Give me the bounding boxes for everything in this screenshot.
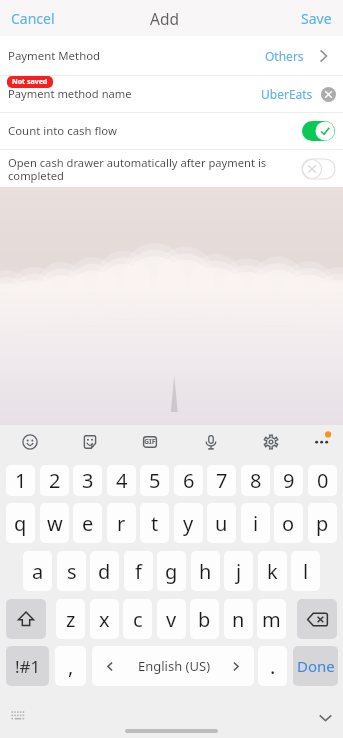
button[interactable]: t bbox=[140, 503, 169, 543]
staticText: g bbox=[165, 558, 178, 585]
staticText: p bbox=[316, 510, 329, 537]
staticText: m bbox=[262, 606, 281, 633]
staticText: Payment method name bbox=[8, 86, 132, 101]
staticText: English (US) bbox=[138, 657, 211, 675]
staticText: o bbox=[282, 510, 295, 537]
button[interactable]: 9 bbox=[274, 465, 303, 496]
button[interactable]: More options bbox=[313, 431, 331, 449]
button[interactable]: Settings bbox=[263, 434, 279, 450]
button[interactable]: p bbox=[308, 503, 337, 543]
button[interactable]: 2 bbox=[40, 465, 69, 496]
staticText: UberEats bbox=[261, 86, 313, 102]
button[interactable]: u bbox=[207, 503, 236, 543]
staticText: GIF bbox=[144, 437, 156, 447]
button[interactable]: Keyboard layout bbox=[11, 710, 25, 721]
staticText: l bbox=[303, 558, 309, 585]
button[interactable]: y bbox=[174, 503, 203, 543]
button[interactable]: Stickers bbox=[82, 434, 98, 450]
button[interactable] bbox=[302, 121, 335, 141]
staticText: s bbox=[67, 558, 77, 585]
staticText: f bbox=[135, 558, 142, 585]
staticText: j bbox=[236, 558, 242, 585]
button[interactable]: v bbox=[157, 599, 186, 639]
staticText: 8 bbox=[250, 467, 262, 494]
staticText: 3 bbox=[82, 467, 94, 494]
button[interactable]: s bbox=[57, 551, 86, 591]
button[interactable]: , bbox=[55, 646, 86, 686]
button[interactable]: English (US) bbox=[92, 646, 254, 686]
button[interactable]: z bbox=[56, 599, 85, 639]
button[interactable]: n bbox=[224, 599, 253, 639]
button[interactable]: g bbox=[157, 551, 186, 591]
button[interactable]: j bbox=[224, 551, 253, 591]
staticText: a bbox=[32, 558, 44, 585]
button[interactable]: f bbox=[124, 551, 153, 591]
button[interactable]: r bbox=[107, 503, 136, 543]
button[interactable]: h bbox=[191, 551, 220, 591]
button[interactable]: m bbox=[257, 599, 286, 639]
staticText: 1 bbox=[15, 467, 27, 494]
button[interactable]: o bbox=[274, 503, 303, 543]
button[interactable]: 6 bbox=[174, 465, 203, 496]
button[interactable]: Count into cash flow bbox=[0, 113, 343, 149]
button[interactable]: 3 bbox=[73, 465, 102, 496]
staticText: Others bbox=[265, 48, 304, 64]
button[interactable]: Backspace bbox=[297, 599, 337, 639]
staticText: 0 bbox=[317, 467, 329, 494]
staticText: 5 bbox=[149, 467, 161, 494]
button[interactable]: 7 bbox=[207, 465, 236, 496]
staticText: Save bbox=[301, 9, 332, 28]
staticText: Done bbox=[297, 656, 335, 676]
staticText: 9 bbox=[283, 467, 295, 494]
staticText: !#1 bbox=[15, 655, 41, 678]
staticText: 2 bbox=[49, 467, 61, 494]
staticText: . bbox=[270, 653, 276, 680]
button[interactable]: b bbox=[190, 599, 219, 639]
button[interactable]: Save bbox=[290, 1, 343, 36]
staticText: z bbox=[66, 606, 76, 633]
button[interactable]: Done bbox=[293, 646, 338, 686]
button[interactable] bbox=[302, 159, 335, 179]
other: Clear bbox=[321, 87, 336, 102]
staticText: Cancel bbox=[11, 9, 55, 28]
button[interactable]: q bbox=[6, 503, 35, 543]
button[interactable]: Open cash drawer automatically after pay… bbox=[0, 150, 343, 187]
button[interactable]: 0 bbox=[308, 465, 337, 496]
staticText: u bbox=[215, 510, 228, 537]
button[interactable]: w bbox=[40, 503, 69, 543]
staticText: q bbox=[14, 510, 27, 537]
button[interactable]: 1 bbox=[6, 465, 35, 496]
button[interactable]: e bbox=[73, 503, 102, 543]
button[interactable]: 8 bbox=[241, 465, 270, 496]
button[interactable]: i bbox=[241, 503, 270, 543]
staticText: v bbox=[166, 606, 177, 633]
button[interactable]: a bbox=[23, 551, 52, 591]
staticText: i bbox=[253, 510, 259, 537]
staticText: h bbox=[199, 558, 212, 585]
button[interactable]: k bbox=[258, 551, 287, 591]
staticText: 7 bbox=[216, 467, 228, 494]
staticText: Open cash drawer automatically after pay… bbox=[8, 155, 267, 183]
button[interactable]: x bbox=[90, 599, 119, 639]
button[interactable]: Cancel bbox=[0, 1, 66, 36]
staticText: y bbox=[183, 510, 194, 537]
button[interactable]: Not saved bbox=[0, 76, 343, 112]
staticText: e bbox=[82, 510, 94, 537]
button[interactable]: GIF bbox=[142, 434, 158, 450]
staticText: 6 bbox=[183, 467, 195, 494]
staticText: d bbox=[98, 558, 111, 585]
button[interactable]: !#1 bbox=[6, 646, 49, 686]
button[interactable]: 4 bbox=[107, 465, 136, 496]
button[interactable]: d bbox=[90, 551, 119, 591]
staticText: n bbox=[232, 606, 245, 633]
button[interactable]: 5 bbox=[140, 465, 169, 496]
button[interactable]: c bbox=[123, 599, 152, 639]
button[interactable]: l bbox=[291, 551, 320, 591]
button[interactable]: Shift bbox=[6, 599, 46, 639]
button[interactable]: Voice input bbox=[203, 434, 219, 450]
button[interactable]: Emoji bbox=[22, 434, 38, 450]
staticText: r bbox=[117, 510, 126, 537]
button[interactable]: . bbox=[258, 646, 287, 686]
button[interactable]: Hide keyboard bbox=[317, 709, 334, 726]
button[interactable]: Payment Method bbox=[0, 36, 343, 75]
